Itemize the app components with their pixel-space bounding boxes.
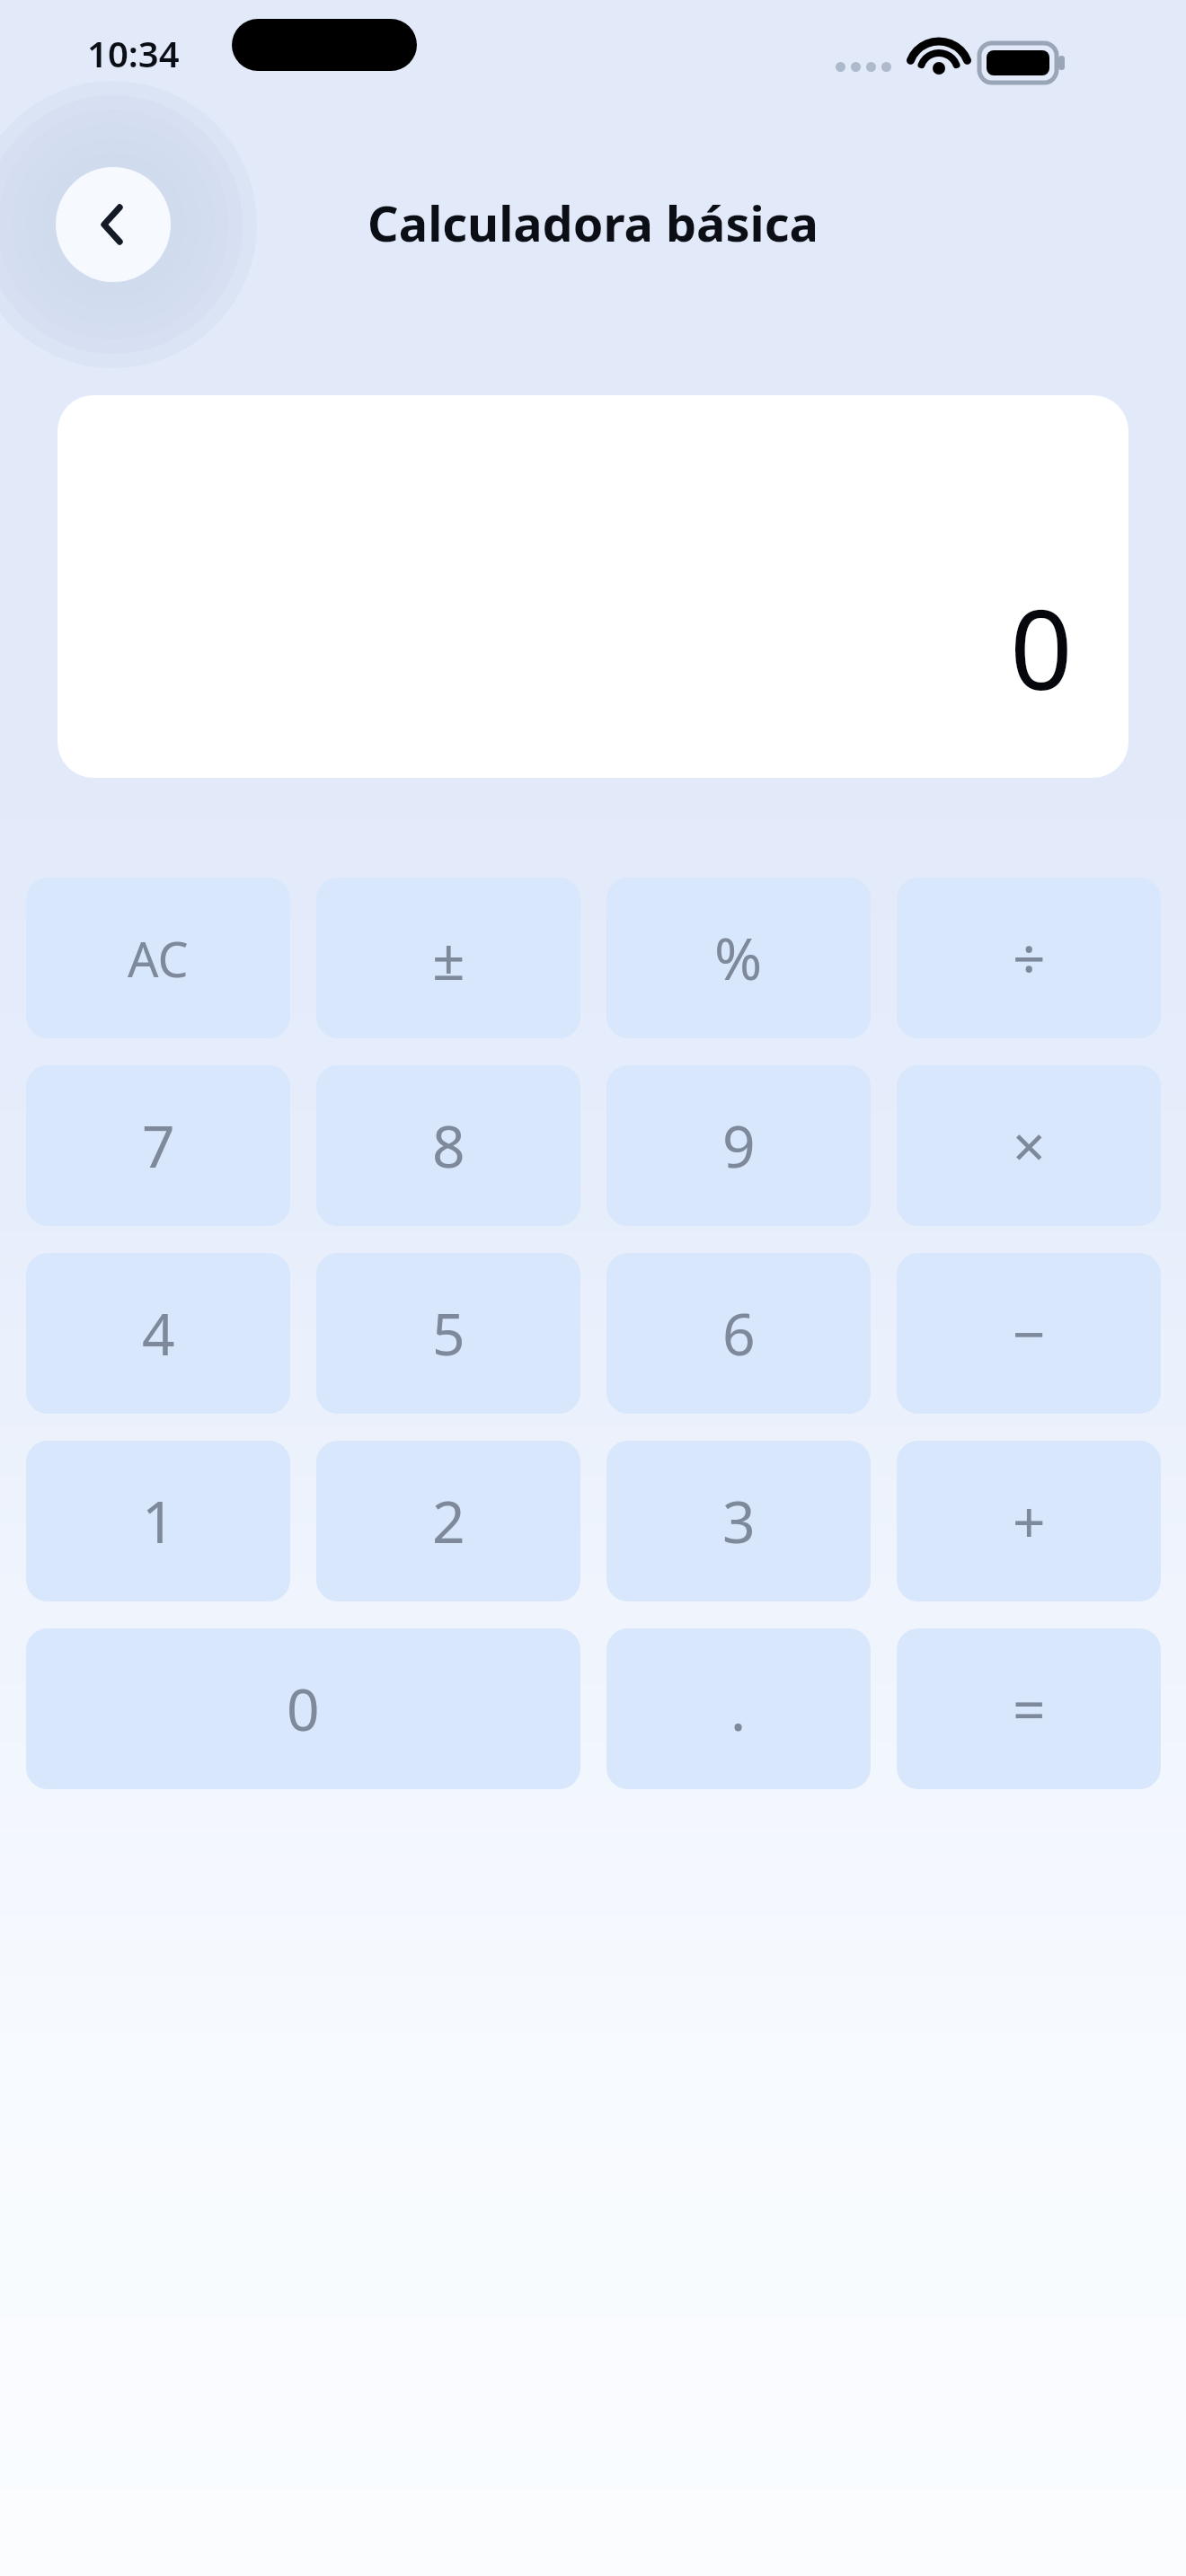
staticText: 2: [432, 1482, 465, 1560]
staticText: 0: [287, 1670, 320, 1748]
button[interactable]: 6: [606, 1253, 871, 1414]
button[interactable]: 7: [26, 1065, 290, 1226]
staticText: 3: [722, 1482, 756, 1560]
staticText: AC: [128, 925, 189, 992]
staticText: −: [1013, 1294, 1046, 1372]
button[interactable]: 4: [26, 1253, 290, 1414]
button[interactable]: 2: [316, 1441, 580, 1601]
staticText: 1: [142, 1482, 175, 1560]
staticText: 6: [722, 1294, 756, 1372]
button[interactable]: 3: [606, 1441, 871, 1601]
button[interactable]: ÷: [897, 878, 1161, 1038]
staticText: +: [1013, 1482, 1046, 1560]
staticText: =: [1013, 1670, 1046, 1748]
staticText: 0: [1010, 573, 1073, 722]
button[interactable]: AC: [26, 878, 290, 1038]
button[interactable]: 8: [316, 1065, 580, 1226]
staticText: ±: [432, 919, 465, 997]
staticText: Calculadora básica: [0, 190, 1186, 256]
staticText: 10:34: [87, 29, 180, 77]
staticText: 5: [432, 1294, 465, 1372]
button[interactable]: +: [897, 1441, 1161, 1601]
staticText: ÷: [1013, 919, 1046, 997]
button[interactable]: 0: [26, 1628, 580, 1789]
button[interactable]: Back: [56, 167, 171, 282]
button[interactable]: ±: [316, 878, 580, 1038]
staticText: 4: [142, 1294, 175, 1372]
button[interactable]: −: [897, 1253, 1161, 1414]
button[interactable]: 1: [26, 1441, 290, 1601]
staticText: 9: [722, 1107, 756, 1185]
staticText: ×: [1013, 1107, 1046, 1185]
button[interactable]: ×: [897, 1065, 1161, 1226]
staticText: .: [730, 1670, 747, 1748]
staticText: %: [714, 919, 763, 997]
staticText: 7: [142, 1107, 175, 1185]
button[interactable]: %: [606, 878, 871, 1038]
staticText: 8: [432, 1107, 465, 1185]
button[interactable]: 9: [606, 1065, 871, 1226]
button[interactable]: .: [606, 1628, 871, 1789]
button[interactable]: =: [897, 1628, 1161, 1789]
button[interactable]: 5: [316, 1253, 580, 1414]
